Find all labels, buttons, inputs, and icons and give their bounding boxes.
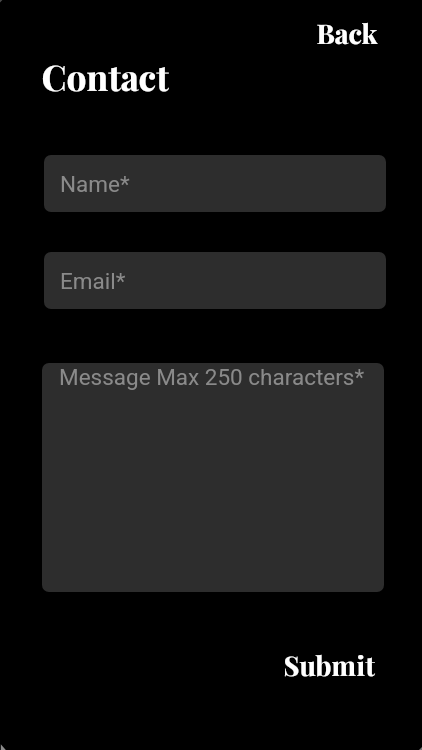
staticText: Message Max 250 characters* xyxy=(59,364,365,390)
button[interactable]: Back xyxy=(307,17,387,51)
staticText: Name* xyxy=(60,171,130,197)
button[interactable]: Email* xyxy=(44,252,386,309)
button[interactable]: Submit xyxy=(275,649,383,683)
button[interactable]: Name* xyxy=(44,155,386,212)
other: Contact xyxy=(41,62,169,92)
button[interactable]: Message Max 250 characters* xyxy=(42,363,384,592)
staticText: Email* xyxy=(60,268,126,294)
